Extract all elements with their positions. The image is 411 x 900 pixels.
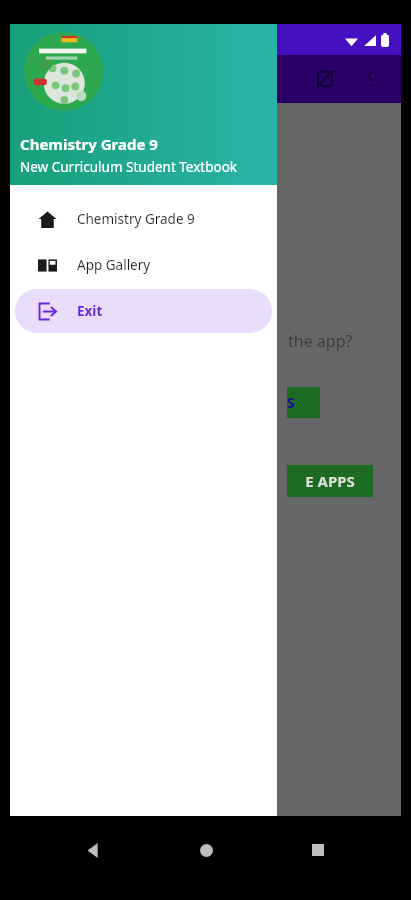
button[interactable]: S <box>287 387 320 418</box>
button[interactable]: Rotation locked <box>305 59 345 99</box>
staticText: Chemistry Grade 9 <box>77 210 195 228</box>
staticText: App Gallery <box>77 256 151 274</box>
button[interactable]: Home <box>186 830 226 870</box>
staticText: the app? <box>288 330 353 352</box>
button[interactable]: App Gallery <box>15 243 272 287</box>
button[interactable]: E APPS <box>287 465 373 497</box>
button[interactable]: Exit <box>15 289 272 333</box>
staticText: E APPS <box>305 471 355 491</box>
staticText: New Curriculum Student Textbook <box>20 158 238 176</box>
button[interactable]: Recent apps <box>298 830 338 870</box>
staticText: 10:57 <box>40 31 74 49</box>
button[interactable]: Chemistry Grade 9 <box>15 197 272 241</box>
staticText: Exit <box>77 302 103 320</box>
button[interactable]: Back <box>73 830 113 870</box>
button[interactable]: More options <box>351 59 391 99</box>
staticText: S <box>287 393 295 412</box>
staticText: Chemistry Grade 9 <box>20 134 158 154</box>
